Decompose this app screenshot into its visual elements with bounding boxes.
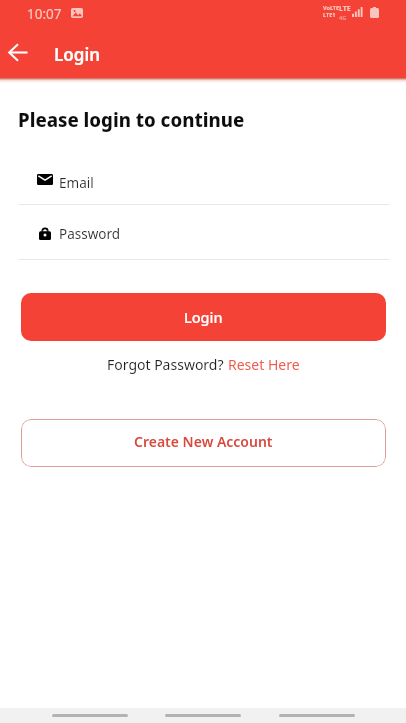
staticText: LTE1: [323, 11, 336, 18]
staticText: Password: [59, 225, 121, 243]
staticText: 4G: [339, 14, 347, 21]
button[interactable]: Home: [165, 714, 241, 717]
button[interactable]: Create New Account: [21, 419, 386, 467]
staticText: VoLTE: [323, 4, 340, 11]
staticText: Forgot Password?: [107, 355, 228, 374]
staticText: Email: [59, 174, 94, 192]
staticText: 10:07: [27, 5, 62, 23]
button[interactable]: Login: [21, 293, 386, 341]
button[interactable]: Back: [52, 714, 128, 717]
staticText: LTE: [339, 4, 351, 14]
button[interactable]: Reset Here: [228, 355, 300, 374]
staticText: Login: [184, 307, 223, 327]
staticText: Please login to continue: [18, 107, 245, 132]
button[interactable]: Recents: [279, 714, 355, 717]
staticText: Login: [54, 43, 101, 66]
staticText: Create New Account: [134, 432, 273, 451]
button[interactable]: Back: [0, 30, 40, 74]
